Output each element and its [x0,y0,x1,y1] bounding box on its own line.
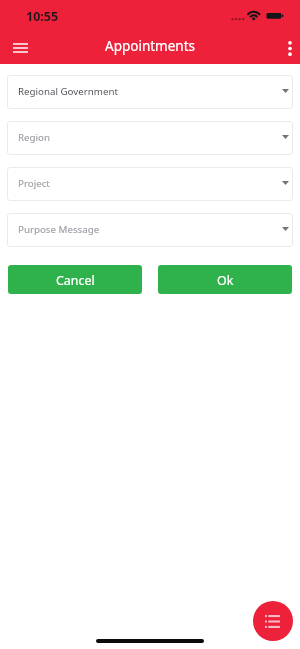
button[interactable]: Cancel [8,265,142,294]
button[interactable]: Show list [253,601,293,641]
staticText: Appointments [105,37,196,55]
button[interactable]: Ok [158,265,292,294]
button[interactable]: Region [7,121,293,155]
button[interactable]: Project [7,167,293,201]
staticText: Project [18,177,50,190]
button[interactable]: Menu [4,32,37,64]
staticText: Cancel [56,272,95,289]
staticText: Regional Government [18,85,118,98]
button[interactable]: Regional Government [7,75,293,109]
staticText: Purpose Message [18,223,100,236]
button[interactable]: Purpose Message [7,213,293,247]
staticText: Ok [217,272,234,289]
staticText: Region [18,131,50,144]
button[interactable]: More options [274,33,300,63]
staticText: 10:55 [26,8,59,25]
